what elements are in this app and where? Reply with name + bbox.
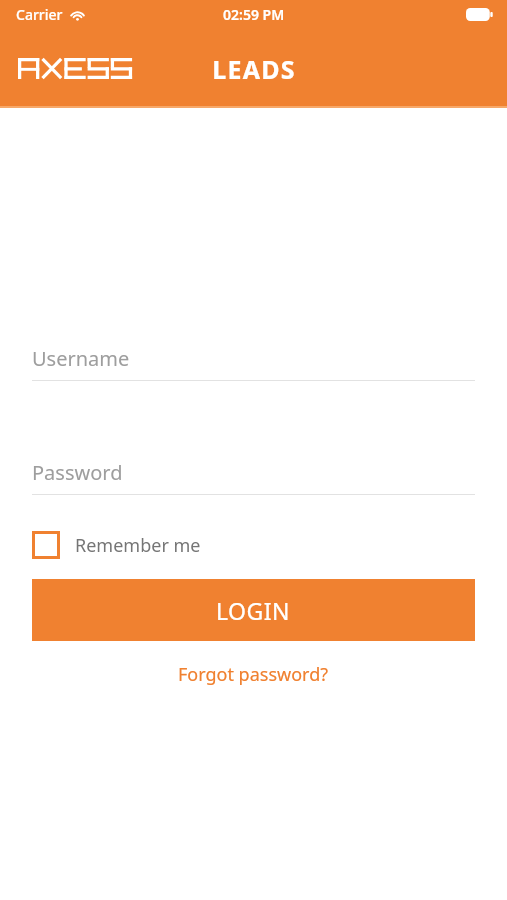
staticText: Password bbox=[32, 459, 123, 486]
staticText: Carrier bbox=[16, 5, 63, 24]
button[interactable]: LOGIN bbox=[32, 579, 475, 641]
button[interactable]: Forgot password? bbox=[32, 659, 475, 689]
staticText: LOGIN bbox=[216, 595, 291, 626]
staticText: 02:59 PM bbox=[223, 5, 285, 24]
button[interactable]: AXESS bbox=[18, 58, 134, 79]
button[interactable]: Password bbox=[32, 450, 475, 494]
staticText: Forgot password? bbox=[178, 662, 329, 687]
button[interactable]: Remember me bbox=[32, 523, 201, 567]
button[interactable]: Username bbox=[32, 336, 475, 380]
staticText: Remember me bbox=[75, 533, 201, 558]
staticText: Username bbox=[32, 345, 130, 372]
staticText: LEADS bbox=[212, 52, 296, 86]
